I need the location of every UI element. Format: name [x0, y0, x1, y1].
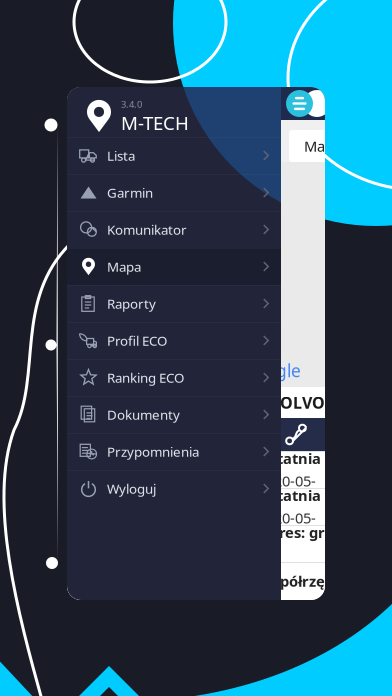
- staticText: Dokumenty: [107, 406, 180, 423]
- button[interactable]: Komunikator: [67, 211, 281, 248]
- staticText: VOLVO: [270, 392, 325, 413]
- button[interactable]: Mapa: [67, 248, 281, 285]
- button[interactable]: Ranking ECO: [67, 359, 281, 396]
- button[interactable]: Mapa: [289, 130, 357, 162]
- button[interactable]: Raporty: [67, 285, 281, 322]
- button[interactable]: Lista: [217, 130, 283, 162]
- staticText: Google: [243, 359, 301, 382]
- button[interactable]: Garmin: [67, 174, 281, 211]
- button[interactable]: Lista: [67, 137, 281, 174]
- staticText: Mapa: [304, 136, 342, 156]
- staticText: 2020-05-: [258, 508, 316, 527]
- staticText: Ranking ECO: [107, 369, 184, 386]
- staticText: Wyloguj: [107, 480, 156, 497]
- staticText: Lista: [234, 136, 266, 156]
- button[interactable]: Search: [303, 89, 331, 117]
- staticText: 3.4.0: [121, 98, 142, 110]
- button[interactable]: Dokumenty: [67, 396, 281, 433]
- button[interactable]: Profil ECO: [67, 322, 281, 359]
- staticText: 2020-05-: [258, 471, 316, 490]
- staticText: Ostatnia: [258, 485, 325, 505]
- staticText: Lista: [107, 147, 135, 164]
- staticText: Mapa: [107, 258, 141, 275]
- staticText: Współrzę: [259, 571, 325, 591]
- staticText: Komunikator: [107, 221, 187, 238]
- button[interactable]: Wyloguj: [67, 470, 281, 507]
- staticText: Raporty: [107, 295, 156, 312]
- staticText: Garmin: [107, 184, 153, 201]
- staticText: M-TECH: [121, 110, 189, 135]
- staticText: Przypomnienia: [107, 443, 199, 460]
- staticText: Profil ECO: [107, 332, 167, 349]
- button[interactable]: Menu: [286, 90, 313, 117]
- button[interactable]: Przypomnienia: [67, 433, 281, 470]
- staticText: Ostatnia: [258, 448, 325, 468]
- staticText: Adres: gr: [260, 522, 325, 542]
